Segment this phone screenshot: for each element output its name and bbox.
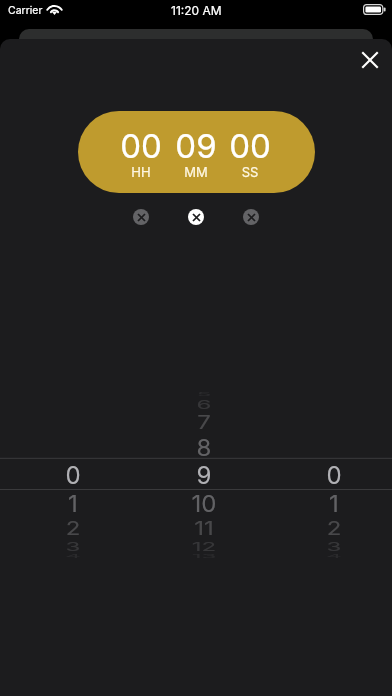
staticText: 12 (164, 539, 244, 555)
staticText: 0 (33, 461, 113, 491)
staticText: 3 (294, 539, 374, 555)
staticText: 2 (294, 517, 374, 540)
staticText: 11:20 AM (171, 3, 222, 18)
staticText: 1 (294, 490, 374, 518)
staticText: 3 (33, 539, 113, 555)
staticText: 09 (156, 126, 236, 166)
staticText: MM (166, 164, 226, 180)
staticText: SS (220, 164, 280, 180)
staticText: 11 (164, 517, 244, 540)
staticText: 9 (164, 461, 244, 491)
staticText: 6 (164, 397, 244, 413)
button[interactable]: Clear (243, 209, 259, 225)
staticText: 1 (33, 490, 113, 518)
staticText: 00 (101, 126, 181, 166)
staticText: 2 (33, 517, 113, 540)
staticText: 10 (164, 490, 244, 518)
staticText: 8 (164, 434, 244, 462)
staticText: HH (111, 164, 171, 180)
button[interactable]: Clear (133, 209, 149, 225)
button[interactable]: Close (348, 39, 392, 82)
staticText: Carrier (8, 4, 43, 17)
staticText: 00 (210, 126, 290, 166)
button[interactable]: 00 (78, 111, 315, 193)
staticText: 0 (294, 461, 374, 491)
staticText: 7 (164, 411, 244, 434)
button[interactable]: Clear (188, 209, 204, 225)
